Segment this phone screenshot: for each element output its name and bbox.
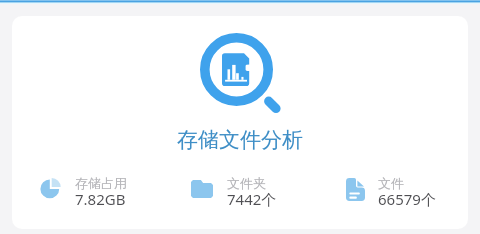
staticText: 文件夹 <box>227 175 266 191</box>
staticText: 文件 <box>378 175 404 191</box>
button[interactable]: Storage file analysis <box>12 16 468 229</box>
other: Storage file analysis <box>200 33 290 123</box>
staticText: 66579个 <box>378 189 436 209</box>
button[interactable]: 存储占用 <box>40 172 137 206</box>
staticText: 存储文件分析 <box>177 127 303 153</box>
staticText: 7442个 <box>227 189 277 209</box>
staticText: 7.82GB <box>75 189 126 209</box>
button[interactable]: 文件夹 <box>191 172 289 206</box>
button[interactable]: 文件 <box>346 172 440 206</box>
staticText: 存储占用 <box>75 175 127 191</box>
